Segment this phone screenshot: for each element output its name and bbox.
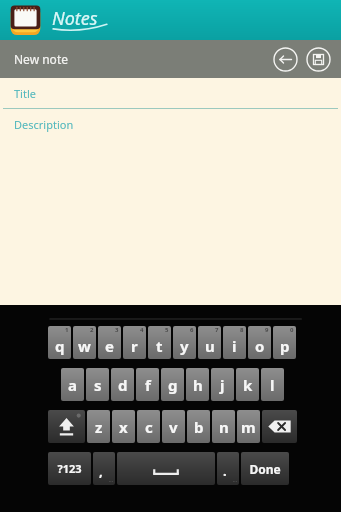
button[interactable]: Space [117, 452, 215, 485]
staticText: Title [14, 86, 36, 101]
staticText: 6 [190, 326, 194, 334]
button[interactable]: 4 [123, 326, 146, 359]
button[interactable]: m [237, 410, 260, 443]
staticText: x [119, 417, 128, 437]
staticText: e [105, 336, 114, 356]
button[interactable]: h [186, 368, 209, 401]
button[interactable]: x [112, 410, 135, 443]
staticText: g [168, 375, 178, 395]
button[interactable]: Back [270, 44, 300, 74]
button[interactable]: 6 [173, 326, 196, 359]
staticText: y [180, 336, 189, 356]
staticText: q [55, 336, 65, 356]
button[interactable]: d [111, 368, 134, 401]
button[interactable]: 5 [148, 326, 171, 359]
staticText: New note [14, 51, 68, 67]
staticText: v [169, 417, 178, 437]
button[interactable]: . [217, 452, 239, 485]
staticText: 7 [215, 326, 219, 334]
button[interactable]: 7 [198, 326, 221, 359]
staticText: Notes [52, 6, 98, 31]
button[interactable]: 1 [48, 326, 71, 359]
button[interactable]: c [137, 410, 160, 443]
staticText: b [194, 417, 204, 437]
staticText: h [193, 375, 203, 395]
button[interactable]: n [212, 410, 235, 443]
button[interactable]: s [86, 368, 109, 401]
button[interactable]: Description [0, 109, 341, 139]
staticText: Done [249, 461, 281, 477]
staticText: l [270, 375, 275, 395]
staticText: ... [109, 477, 114, 484]
button[interactable]: 0 [273, 326, 296, 359]
staticText: d [118, 375, 128, 395]
staticText: o [255, 336, 265, 356]
staticText: 9 [265, 326, 269, 334]
button[interactable]: k [236, 368, 259, 401]
button[interactable]: 2 [73, 326, 96, 359]
button[interactable]: a [61, 368, 84, 401]
staticText: n [219, 417, 229, 437]
button[interactable]: Done [241, 452, 289, 485]
staticText: k [243, 375, 253, 395]
staticText: 2 [90, 326, 94, 334]
staticText: j [220, 375, 225, 395]
staticText: Description [14, 117, 74, 132]
staticText: ... [233, 477, 238, 484]
staticText: . [223, 462, 227, 480]
button[interactable]: f [136, 368, 159, 401]
button[interactable]: Delete [262, 410, 297, 443]
staticText: 5 [165, 326, 169, 334]
button[interactable]: j [211, 368, 234, 401]
staticText: 1 [65, 326, 69, 334]
button[interactable]: Save [303, 44, 333, 74]
button[interactable]: z [87, 410, 110, 443]
button[interactable]: b [187, 410, 210, 443]
staticText: s [94, 375, 102, 395]
staticText: m [241, 417, 256, 437]
staticText: r [131, 336, 138, 356]
button[interactable]: 8 [223, 326, 246, 359]
staticText: c [145, 417, 153, 437]
staticText: t [156, 336, 163, 356]
button[interactable]: g [161, 368, 184, 401]
button[interactable]: Title [0, 78, 341, 109]
staticText: w [78, 336, 91, 356]
button[interactable]: Shift [48, 410, 85, 443]
staticText: u [205, 336, 215, 356]
staticText: f [145, 375, 151, 395]
button[interactable]: 3 [98, 326, 121, 359]
staticText: , [99, 462, 103, 480]
button[interactable]: 9 [248, 326, 271, 359]
staticText: ?123 [57, 461, 82, 476]
staticText: 3 [115, 326, 119, 334]
staticText: 0 [290, 326, 294, 334]
button[interactable]: l [261, 368, 284, 401]
staticText: 8 [240, 326, 244, 334]
button[interactable]: ?123 [48, 452, 91, 485]
button[interactable]: , [93, 452, 115, 485]
staticText: a [68, 375, 77, 395]
button[interactable]: v [162, 410, 185, 443]
staticText: p [280, 336, 290, 356]
staticText: i [232, 336, 237, 356]
staticText: z [95, 417, 103, 437]
staticText: 4 [140, 326, 144, 334]
